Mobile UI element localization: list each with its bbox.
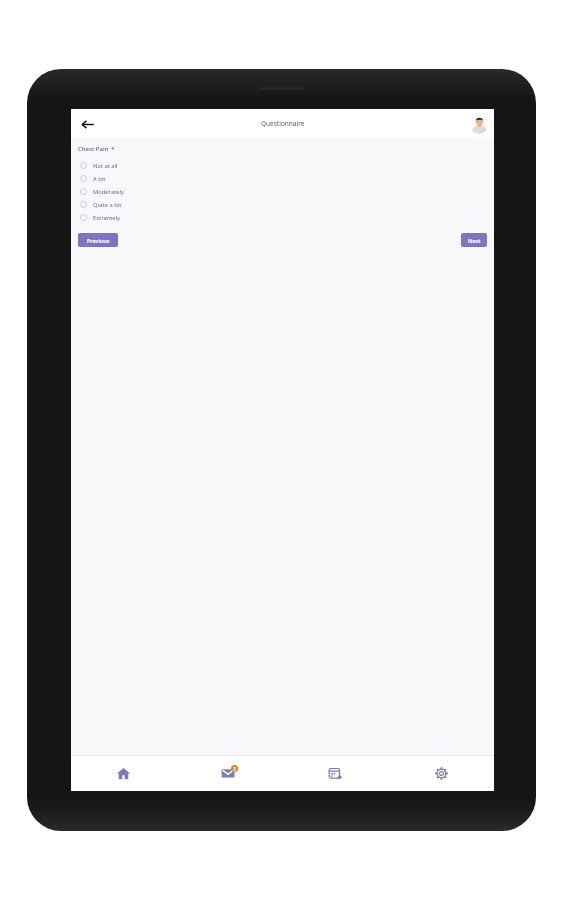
- button[interactable]: Back: [75, 112, 99, 136]
- staticText: Next: [468, 237, 481, 244]
- button[interactable]: Profile: [469, 114, 489, 134]
- staticText: Questionnaire: [261, 119, 305, 128]
- staticText: Not at all: [93, 162, 118, 170]
- staticText: *: [111, 145, 115, 153]
- button[interactable]: Extremely: [78, 211, 487, 224]
- button[interactable]: Settings: [388, 755, 494, 791]
- button[interactable]: Moderately: [78, 185, 487, 198]
- button[interactable]: Not at all: [78, 159, 487, 172]
- button[interactable]: Previous: [78, 233, 118, 247]
- button[interactable]: Calendar: [282, 755, 388, 791]
- staticText: Quite a bit: [93, 201, 122, 209]
- staticText: Extremely: [93, 214, 121, 222]
- staticText: Chest Pain: [78, 145, 109, 153]
- button[interactable]: A bit: [78, 172, 487, 185]
- staticText: Previous: [87, 237, 110, 244]
- staticText: 2: [233, 766, 236, 772]
- button[interactable]: Quite a bit: [78, 198, 487, 211]
- button[interactable]: Messages: [176, 755, 282, 791]
- button[interactable]: Next: [461, 233, 487, 247]
- staticText: Moderately: [93, 188, 124, 196]
- staticText: A bit: [93, 175, 106, 183]
- button[interactable]: Home: [71, 755, 176, 791]
